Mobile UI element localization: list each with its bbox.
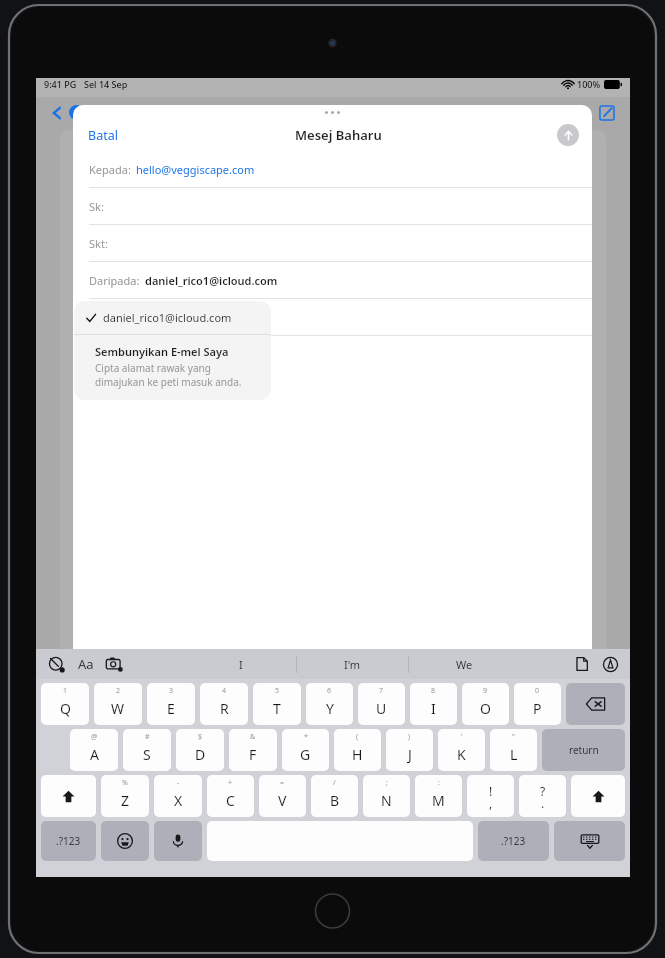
button[interactable]: Undo — [44, 652, 68, 676]
staticText: 4 — [222, 686, 227, 696]
button[interactable]: 9 — [462, 683, 509, 725]
staticText: 6 — [327, 686, 332, 696]
button[interactable]: We — [409, 649, 520, 679]
button[interactable]: " — [490, 729, 537, 771]
staticText: Sembunyikan E-mel Saya — [95, 344, 229, 359]
button[interactable]: 7 — [358, 683, 405, 725]
button[interactable]: Shift — [41, 775, 96, 817]
button[interactable]: % — [101, 775, 149, 817]
staticText: 3 — [169, 686, 174, 696]
staticText: I'm — [344, 657, 361, 672]
button[interactable]: return — [542, 729, 625, 771]
staticText: Y — [326, 699, 334, 718]
button[interactable]: Back — [46, 102, 68, 124]
button[interactable]: daniel_rico1@icloud.com — [74, 301, 271, 334]
button[interactable]: + — [207, 775, 254, 817]
staticText: 100% — [577, 78, 601, 90]
staticText: B — [330, 791, 340, 810]
staticText: hello@veggiscape.com — [136, 162, 255, 177]
staticText: ( — [356, 732, 359, 742]
button[interactable]: Markup — [598, 652, 622, 676]
button[interactable]: Format text — [74, 652, 98, 676]
staticText: ; — [386, 778, 388, 788]
button[interactable]: & — [229, 729, 277, 771]
button[interactable]: Hide keyboard — [554, 821, 625, 861]
staticText: 5 — [275, 686, 280, 696]
button[interactable]: .?123 — [478, 821, 549, 861]
button[interactable]: 0 — [514, 683, 561, 725]
button[interactable]: 8 — [410, 683, 457, 725]
button[interactable]: 2 — [94, 683, 142, 725]
staticText: * — [304, 732, 308, 742]
button[interactable]: Batal — [86, 123, 120, 148]
staticText: C — [226, 791, 235, 810]
button[interactable]: 5 — [253, 683, 301, 725]
button[interactable]: I'm — [297, 649, 408, 679]
button[interactable]: Move to folder — [556, 100, 582, 126]
staticText: " — [512, 732, 515, 742]
staticText: 8 — [431, 686, 436, 696]
staticText: T — [273, 699, 281, 718]
staticText: dimajukan ke peti masuk anda. — [95, 375, 242, 389]
button[interactable]: Unread count — [69, 105, 84, 120]
button[interactable]: ? — [519, 775, 566, 817]
button[interactable]: ! — [467, 775, 514, 817]
staticText: 0 — [535, 686, 540, 696]
staticText: 9:41 PG — [44, 78, 77, 90]
button[interactable]: / — [311, 775, 358, 817]
staticText: Dihantar dari iPad saya — [89, 350, 209, 365]
staticText: R — [220, 699, 229, 718]
button[interactable]: $ — [176, 729, 224, 771]
staticText: A — [90, 745, 99, 764]
button[interactable]: Backspace — [566, 683, 625, 725]
staticText: S — [143, 745, 151, 764]
button[interactable]: : — [415, 775, 462, 817]
staticText: ' — [461, 732, 463, 742]
staticText: Z — [121, 791, 130, 810]
staticText: daniel_rico1@icloud.com — [103, 310, 232, 325]
button[interactable]: * — [282, 729, 329, 771]
button[interactable]: ; — [363, 775, 410, 817]
button[interactable]: @ — [70, 729, 118, 771]
button[interactable]: Compose — [594, 100, 620, 126]
staticText: E — [167, 699, 175, 718]
button[interactable]: ) — [386, 729, 433, 771]
button[interactable]: Insert photo — [102, 652, 126, 676]
button[interactable]: = — [259, 775, 306, 817]
button[interactable]: 4 — [200, 683, 248, 725]
staticText: @ — [91, 732, 98, 742]
staticText: P — [533, 699, 542, 718]
button[interactable]: Emoji — [101, 821, 149, 861]
button[interactable]: Send — [557, 124, 579, 146]
staticText: H — [352, 745, 363, 764]
button[interactable]: - — [154, 775, 202, 817]
button[interactable]: ( — [334, 729, 381, 771]
button[interactable]: I — [186, 649, 296, 679]
staticText: 9 — [483, 686, 488, 696]
button[interactable]: Insert document — [570, 652, 594, 676]
button[interactable]: Delete — [518, 100, 544, 126]
staticText: Sel 14 Sep — [84, 78, 128, 90]
staticText: # — [145, 732, 150, 742]
staticText: V — [278, 791, 287, 810]
button[interactable]: Shift — [571, 775, 625, 817]
staticText: - — [177, 778, 180, 788]
button[interactable]: ' — [438, 729, 485, 771]
staticText: , — [489, 795, 493, 811]
staticText: D — [195, 745, 206, 764]
staticText: Batal — [88, 127, 118, 144]
button[interactable]: Dictation — [154, 821, 202, 861]
staticText: X — [174, 791, 183, 810]
staticText: .?123 — [501, 834, 526, 848]
button[interactable]: .?123 — [41, 821, 96, 861]
button[interactable]: 1 — [41, 683, 89, 725]
staticText: 7 — [379, 686, 384, 696]
staticText: 7 — [74, 107, 79, 118]
staticText: Q — [60, 699, 71, 718]
button[interactable]: # — [123, 729, 171, 771]
button[interactable]: 3 — [147, 683, 195, 725]
staticText: G — [300, 745, 311, 764]
button[interactable]: Sembunyikan E-mel Saya — [74, 335, 271, 400]
button[interactable]: 6 — [306, 683, 353, 725]
